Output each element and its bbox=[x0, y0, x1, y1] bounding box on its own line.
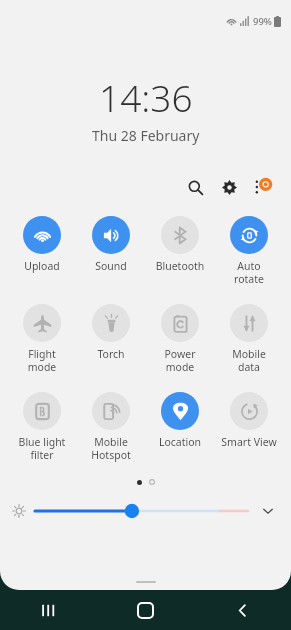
staticText: Mobile Hotspot bbox=[78, 435, 144, 462]
staticText: Blue light filter bbox=[9, 435, 75, 462]
button[interactable]: Back bbox=[194, 590, 291, 630]
button[interactable]: Flight mode bbox=[9, 303, 75, 375]
button[interactable]: Search bbox=[181, 173, 209, 201]
button[interactable]: Mobile Hotspot bbox=[78, 391, 144, 463]
button[interactable]: Auto rotate bbox=[216, 215, 282, 287]
staticText: Mobile data bbox=[216, 347, 282, 374]
staticText: Upload bbox=[9, 259, 75, 273]
button[interactable]: Expand brightness settings bbox=[257, 500, 279, 522]
button[interactable]: Sound bbox=[78, 215, 144, 274]
button[interactable]: Location bbox=[147, 391, 213, 450]
staticText: Thu 28 February bbox=[92, 126, 200, 145]
button[interactable]: Power mode bbox=[147, 303, 213, 375]
staticText: Location bbox=[147, 435, 213, 449]
staticText: Sound bbox=[78, 259, 144, 273]
button[interactable]: Torch bbox=[78, 303, 144, 362]
staticText: Auto rotate bbox=[216, 259, 282, 286]
staticText: Power mode bbox=[147, 347, 213, 374]
button[interactable]: Bluetooth bbox=[147, 215, 213, 274]
button[interactable]: More options bbox=[249, 173, 277, 201]
button[interactable]: Mobile data bbox=[216, 303, 282, 375]
staticText: 99% bbox=[253, 15, 272, 28]
button[interactable]: Smart View bbox=[216, 391, 282, 450]
button[interactable]: Blue light filter bbox=[9, 391, 75, 463]
staticText: Flight mode bbox=[9, 347, 75, 374]
staticText: Torch bbox=[78, 347, 144, 361]
button[interactable]: Upload bbox=[9, 215, 75, 274]
button[interactable]: Settings bbox=[215, 173, 243, 201]
button[interactable]: Home bbox=[97, 590, 194, 630]
button[interactable]: Recent apps bbox=[0, 590, 97, 630]
staticText: Bluetooth bbox=[147, 259, 213, 273]
staticText: 14:36 bbox=[99, 72, 193, 122]
staticText: Smart View bbox=[216, 435, 282, 449]
button[interactable]: Brightness bbox=[35, 500, 248, 522]
